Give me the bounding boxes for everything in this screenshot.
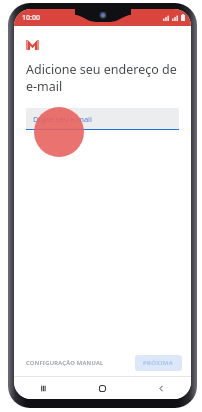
button[interactable]: Back bbox=[132, 377, 191, 399]
button[interactable]: Home bbox=[73, 377, 132, 399]
staticText: Adicione seu endereço de e-mail bbox=[26, 61, 177, 94]
button[interactable]: PRÓXIMA bbox=[135, 355, 182, 371]
button[interactable]: CONFIGURAÇÃO MANUAL bbox=[22, 355, 108, 371]
staticText: PRÓXIMA bbox=[143, 359, 174, 367]
button[interactable]: Recent apps bbox=[14, 377, 73, 399]
staticText: 10:00 bbox=[22, 13, 40, 23]
button[interactable]: Digite seu e-mail bbox=[26, 108, 179, 130]
staticText: Digite seu e-mail bbox=[33, 114, 92, 124]
staticText: CONFIGURAÇÃO MANUAL bbox=[26, 359, 104, 367]
